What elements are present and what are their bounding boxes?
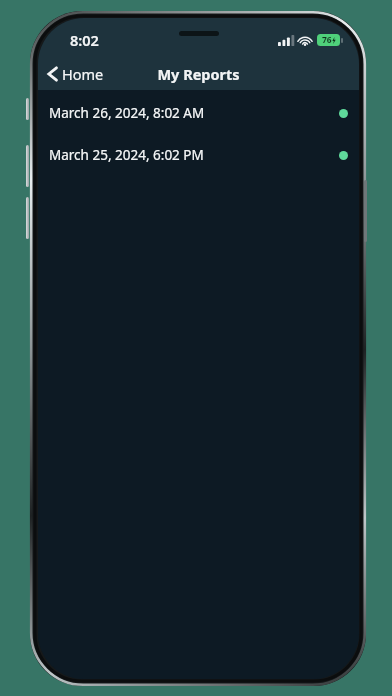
staticText: March 26, 2024, 8:02 AM — [49, 104, 205, 122]
staticText: My Reports — [157, 64, 240, 84]
staticText: March 25, 2024, 6:02 PM — [49, 146, 204, 164]
button[interactable]: Back — [38, 60, 114, 88]
button[interactable]: March 25, 2024, 6:02 PM — [38, 134, 359, 176]
other: Back — [47, 65, 58, 83]
button[interactable]: March 26, 2024, 8:02 AM — [38, 92, 359, 134]
staticText: 8:02 — [70, 30, 99, 50]
staticText: 76 — [322, 34, 332, 46]
staticText: Home — [62, 64, 104, 84]
